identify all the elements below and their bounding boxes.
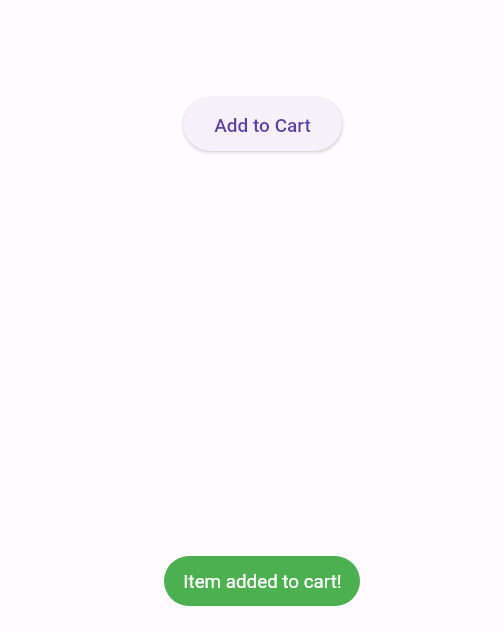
button[interactable]: Add to Cart [183,97,342,151]
button[interactable]: Item added to cart! [164,556,360,606]
staticText: Add to Cart [214,114,311,136]
staticText: Item added to cart! [183,571,342,593]
